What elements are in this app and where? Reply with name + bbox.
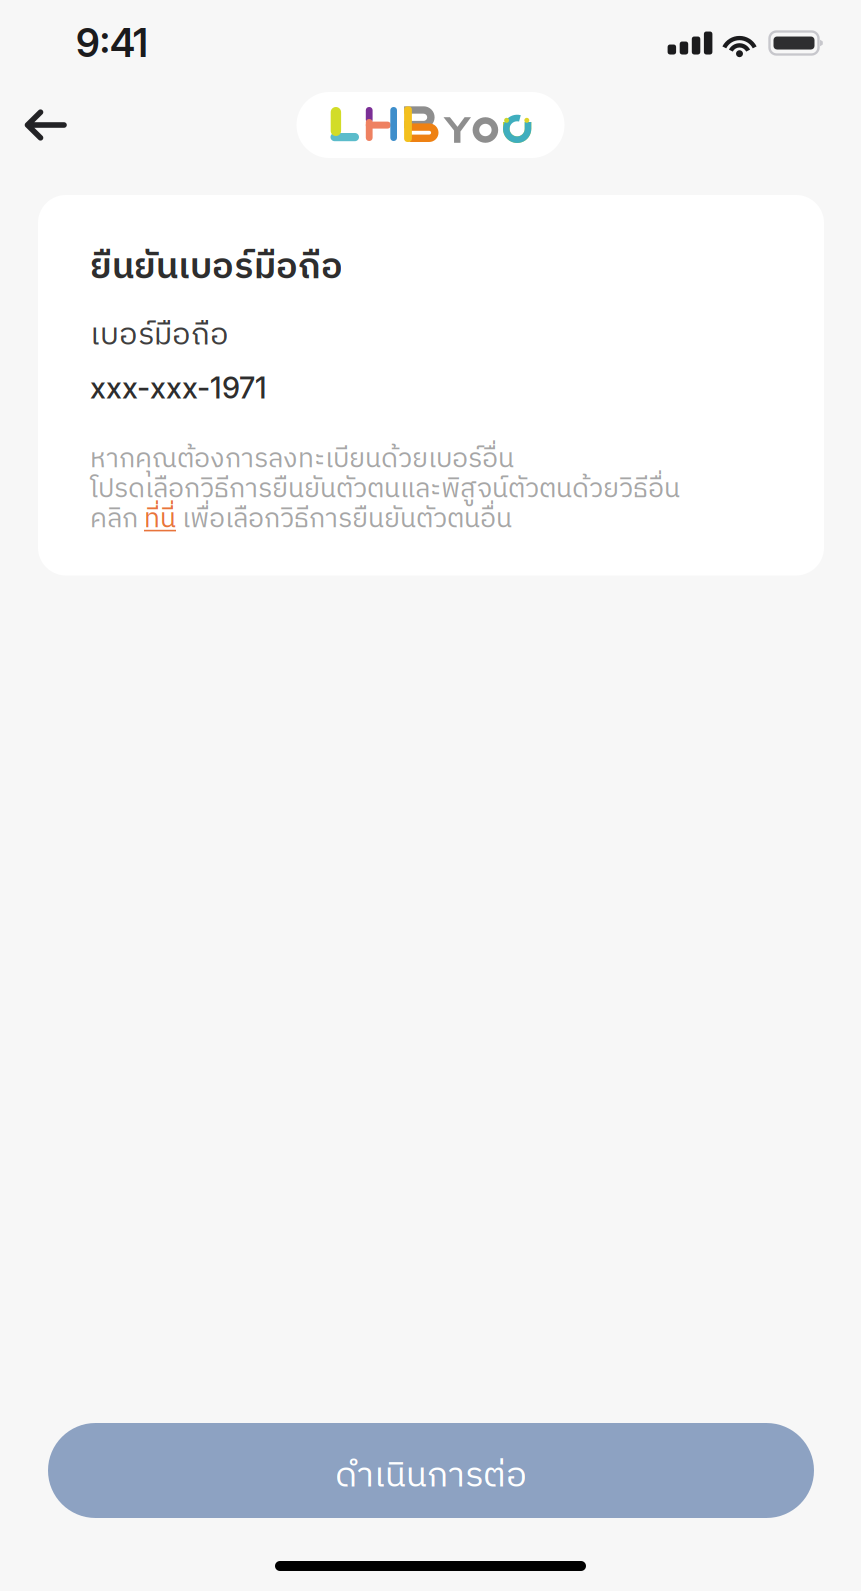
button[interactable]: ดำเนินการต่อ (48, 1423, 814, 1518)
button[interactable]: ที่นี่ (144, 497, 176, 541)
staticText: โปรดเลือกวิธีการยืนยันตัวตนและพิสูจน์ตัว… (90, 467, 680, 511)
staticText: 9:41 (76, 20, 148, 66)
button[interactable]: Back (0, 92, 85, 158)
staticText: คลิก (90, 497, 144, 541)
staticText: เพื่อเลือกวิธีการยืนยันตัวตนอื่น (176, 497, 512, 541)
staticText: ยืนยันเบอร์มือถือ (90, 238, 343, 297)
staticText: ที่นี่ (144, 497, 176, 541)
staticText: xxx-xxx-1971 (90, 370, 267, 405)
staticText: ดำเนินการต่อ (335, 1448, 527, 1505)
staticText: หากคุณต้องการลงทะเบียนด้วยเบอร์อื่น (90, 437, 514, 481)
staticText: เบอร์มือถือ (90, 310, 229, 361)
